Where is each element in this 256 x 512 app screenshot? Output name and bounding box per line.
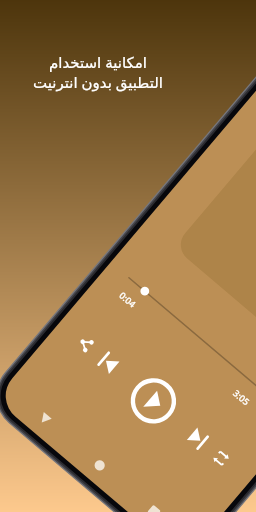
staticText: 0:04 bbox=[117, 289, 139, 310]
staticText: 3:05 bbox=[231, 387, 252, 407]
staticText: التطبيق بدون انترنيت bbox=[33, 72, 163, 92]
staticText: امكانية استخدام bbox=[49, 52, 147, 72]
